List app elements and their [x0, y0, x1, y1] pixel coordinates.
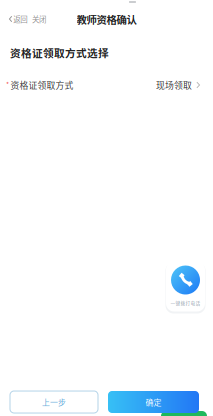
staticText: 关闭: [32, 14, 46, 24]
staticText: 现场领取: [156, 79, 192, 91]
staticText: 确定: [145, 396, 161, 408]
staticText: *: [6, 79, 9, 89]
staticText: 资格证领取方式选择: [10, 45, 109, 60]
button[interactable]: 确定: [108, 391, 199, 413]
button[interactable]: 上一步: [10, 391, 98, 413]
staticText: 上一步: [42, 396, 66, 408]
button[interactable]: 一键拨打电话: [166, 262, 205, 312]
button[interactable]: *: [0, 75, 213, 95]
staticText: 一键拨打电话: [170, 299, 200, 306]
button[interactable]: 关闭: [30, 11, 48, 27]
button[interactable]: 返回: [7, 11, 29, 27]
staticText: 资格证领取方式: [10, 79, 73, 91]
staticText: 教师资格确认: [76, 12, 136, 27]
staticText: 返回: [13, 14, 27, 24]
